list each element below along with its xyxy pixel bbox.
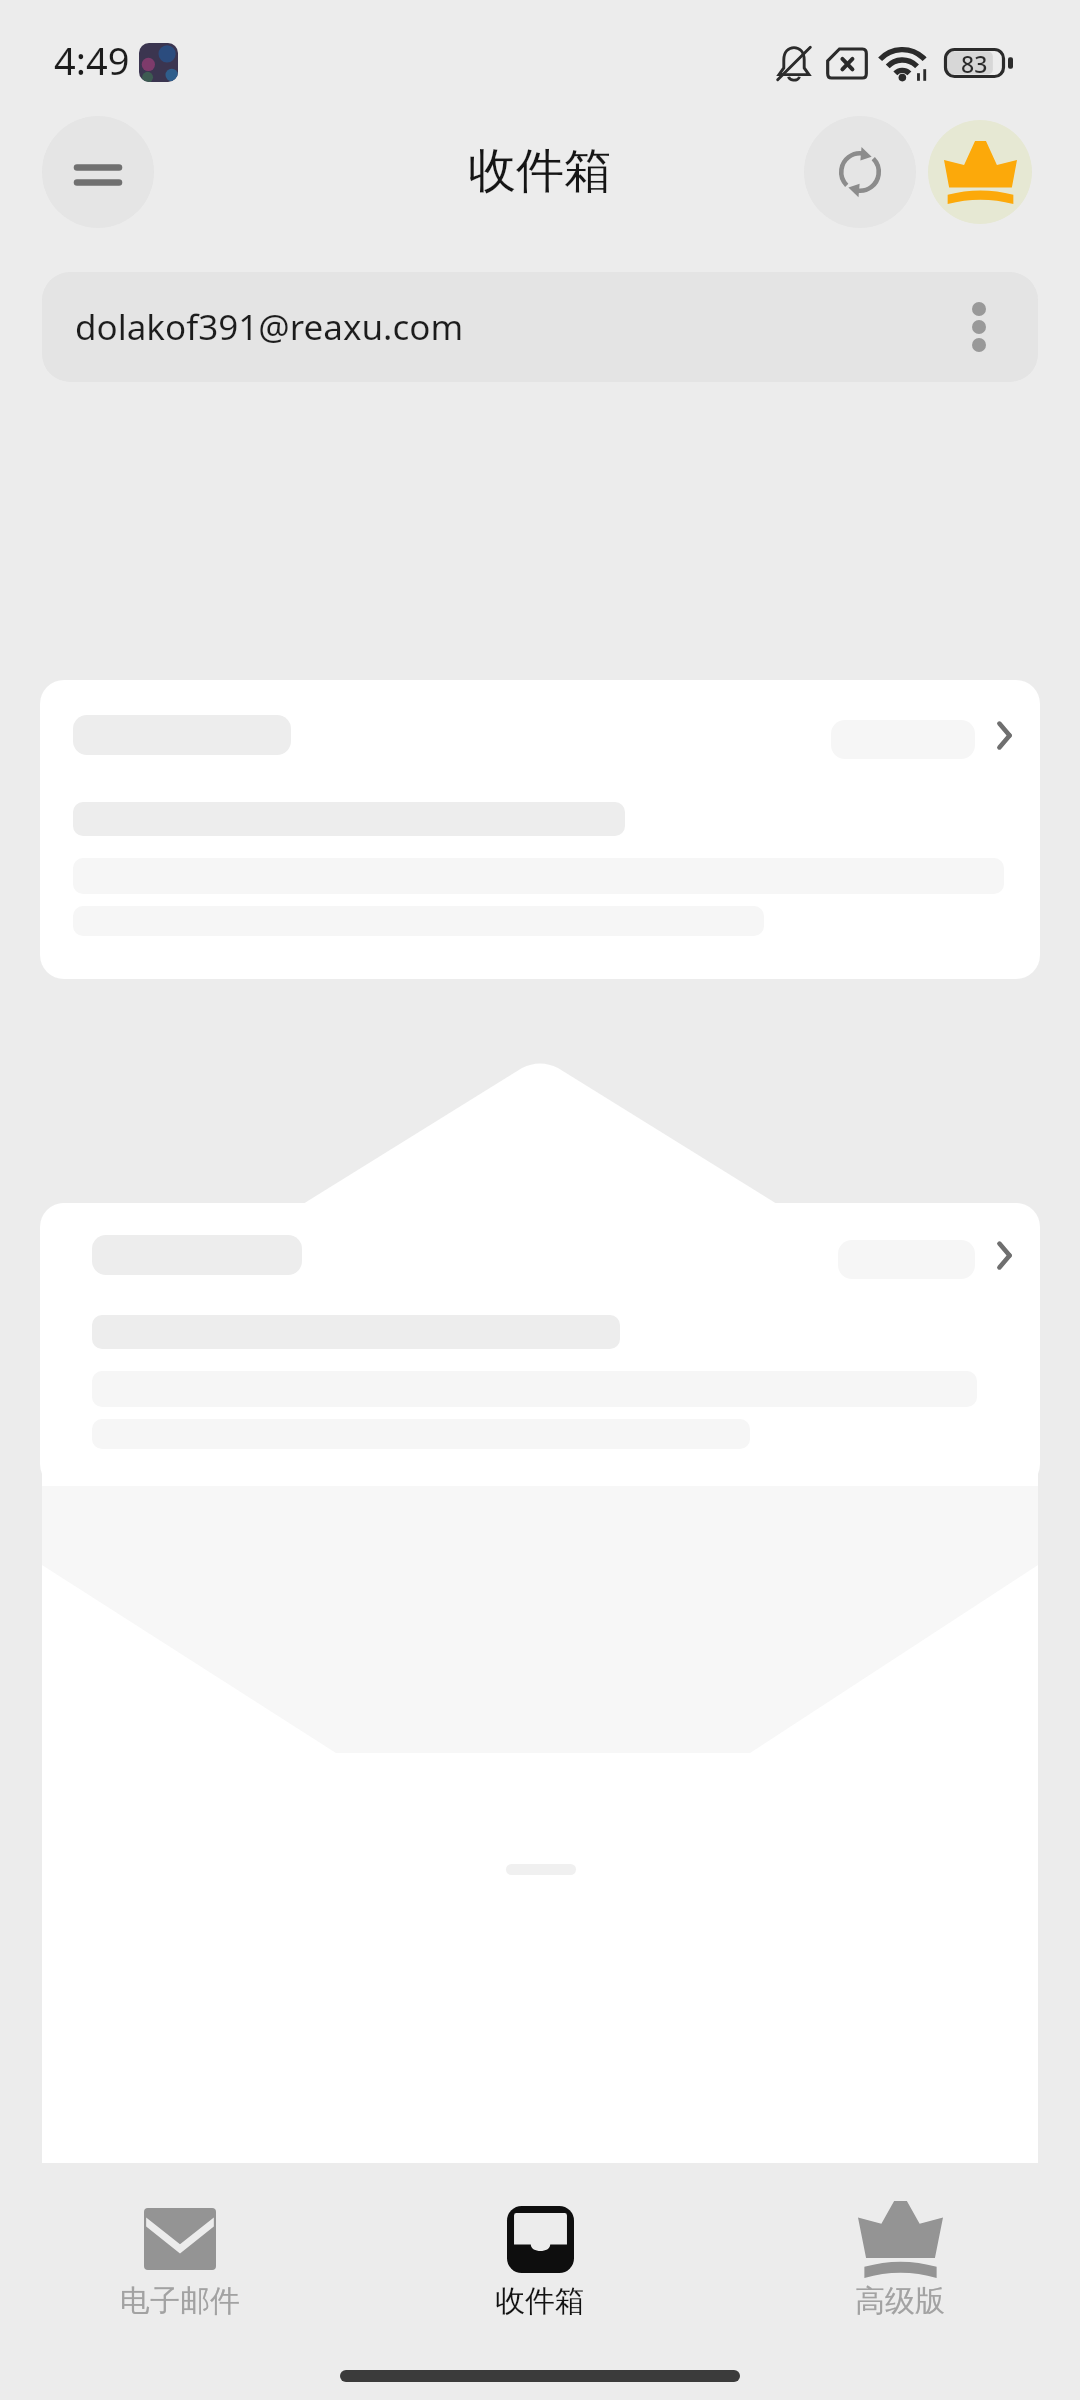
button[interactable]: 收件箱 (360, 2180, 720, 2320)
button[interactable]: Premium (928, 120, 1032, 224)
button[interactable]: 高级版 (720, 2180, 1080, 2320)
staticText: dolakof391@reaxu.com (75, 303, 464, 351)
button[interactable] (40, 680, 1040, 979)
staticText: 收件箱 (495, 2282, 585, 2320)
button[interactable]: Refresh (804, 116, 916, 228)
button[interactable]: 电子邮件 (0, 2180, 360, 2320)
staticText: 电子邮件 (120, 2282, 240, 2320)
button[interactable] (40, 1203, 1040, 1488)
staticText: 收件箱 (468, 141, 612, 201)
staticText: 83 (961, 48, 988, 78)
button[interactable]: More options (948, 296, 1010, 358)
button[interactable]: dolakof391@reaxu.com (42, 272, 1038, 382)
button[interactable]: Menu (42, 116, 154, 228)
staticText: 高级版 (855, 2282, 945, 2320)
staticText: 4:49 (54, 34, 130, 86)
